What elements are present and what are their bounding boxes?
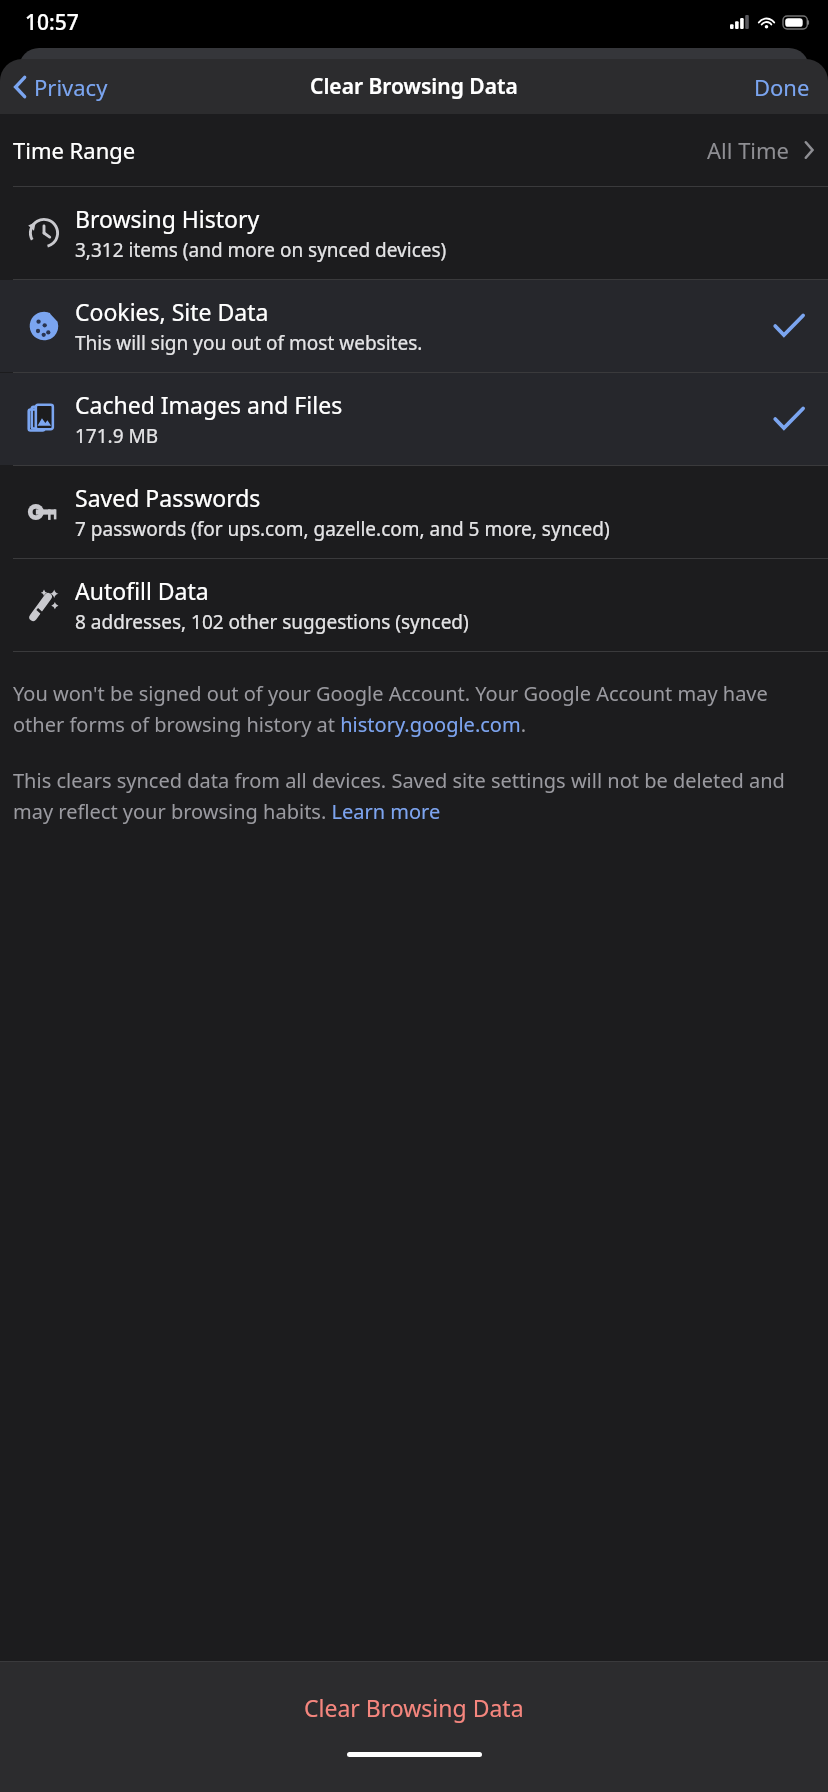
staticText: Saved Passwords xyxy=(75,482,261,513)
staticText: 171.9 MB xyxy=(75,423,159,449)
staticText: Privacy xyxy=(34,72,108,102)
staticText: Clear Browsing Data xyxy=(310,72,518,101)
staticText: 3,312 items (and more on synced devices) xyxy=(75,237,447,263)
staticText: This clears synced data from all devices… xyxy=(13,767,814,824)
button[interactable]: Autofill Data xyxy=(0,559,828,651)
button[interactable]: Cookies, Site Data xyxy=(0,280,828,372)
staticText: 7 passwords (for ups.com, gazelle.com, a… xyxy=(75,516,610,542)
button[interactable]: Browsing History xyxy=(0,187,828,279)
staticText: Done xyxy=(754,72,810,102)
button[interactable]: Clear Browsing Data xyxy=(0,1662,828,1752)
button[interactable]: Cached Images and Files xyxy=(0,373,828,465)
button[interactable]: Privacy xyxy=(8,66,114,108)
staticText: Cookies, Site Data xyxy=(75,296,269,327)
staticText: You won't be signed out of your Google A… xyxy=(13,680,814,737)
button[interactable]: Saved Passwords xyxy=(0,466,828,558)
staticText: This will sign you out of most websites. xyxy=(75,330,423,356)
staticText: All Time xyxy=(707,135,790,165)
staticText: Autofill Data xyxy=(75,575,209,606)
button[interactable]: Time Range xyxy=(0,114,828,186)
button[interactable]: Done xyxy=(746,66,818,108)
staticText: 10:57 xyxy=(25,8,79,37)
staticText: Cached Images and Files xyxy=(75,389,343,420)
staticText: Time Range xyxy=(13,135,136,165)
staticText: 8 addresses, 102 other suggestions (sync… xyxy=(75,609,469,635)
staticText: Browsing History xyxy=(75,203,260,234)
staticText: Clear Browsing Data xyxy=(304,1692,524,1723)
